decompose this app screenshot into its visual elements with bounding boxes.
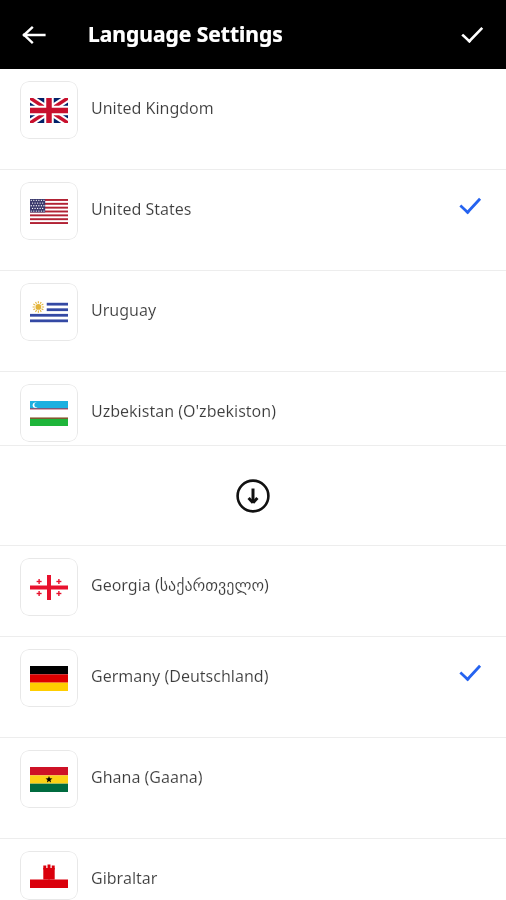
- staticText: Germany (Deutschland): [91, 665, 269, 687]
- staticText: Georgia (საქართველო): [91, 574, 269, 596]
- button[interactable]: United Kingdom: [0, 69, 506, 169]
- button[interactable]: Uzbekistan (O'zbekiston): [0, 372, 506, 445]
- staticText: Ghana (Gaana): [91, 766, 203, 788]
- button[interactable]: Ghana (Gaana): [0, 738, 506, 838]
- button[interactable]: Load more languages: [0, 446, 506, 545]
- other: Load more languages: [233, 476, 273, 516]
- button[interactable]: Gibraltar: [0, 839, 506, 900]
- button[interactable]: United States: [0, 170, 506, 270]
- button[interactable]: Confirm selection: [446, 9, 498, 61]
- staticText: Uzbekistan (O'zbekiston): [91, 400, 276, 422]
- staticText: United Kingdom: [91, 97, 214, 119]
- button[interactable]: Uruguay: [0, 271, 506, 371]
- button[interactable]: Germany (Deutschland): [0, 637, 506, 737]
- staticText: United States: [91, 198, 192, 220]
- button[interactable]: Georgia (საქართველო): [0, 546, 506, 636]
- staticText: Gibraltar: [91, 867, 158, 889]
- staticText: Uruguay: [91, 299, 157, 321]
- button[interactable]: Back: [8, 9, 60, 61]
- staticText: Language Settings: [88, 20, 283, 49]
